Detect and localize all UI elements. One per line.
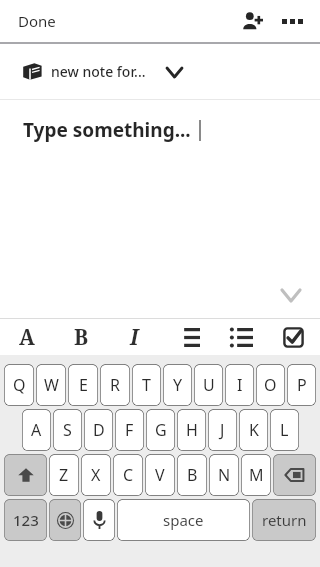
button[interactable]: W	[36, 364, 66, 406]
button[interactable]: N	[209, 454, 239, 496]
staticText: A	[31, 419, 42, 441]
staticText: Done	[18, 11, 56, 31]
button[interactable]: space	[117, 499, 250, 541]
button[interactable]: Numbered list	[161, 319, 214, 355]
button[interactable]: Voice input	[83, 499, 115, 541]
staticText: U	[203, 374, 215, 396]
button[interactable]: C	[113, 454, 143, 496]
button[interactable]: T	[132, 364, 161, 406]
staticText: 123	[13, 510, 39, 530]
button[interactable]: S	[53, 409, 82, 451]
button[interactable]: Bold	[54, 319, 108, 355]
button[interactable]: return	[252, 499, 316, 541]
button[interactable]: Done	[8, 5, 66, 37]
staticText: new note for...	[51, 62, 146, 81]
button[interactable]: Italic	[108, 319, 161, 355]
button[interactable]: K	[239, 409, 268, 451]
button[interactable]: B	[177, 454, 207, 496]
staticText: G	[155, 419, 167, 441]
staticText: Type something...	[23, 117, 191, 143]
button[interactable]: Checklist	[267, 319, 320, 355]
button[interactable]: E	[68, 364, 98, 406]
button[interactable]: D	[84, 409, 113, 451]
staticText: A	[19, 323, 35, 352]
staticText: N	[218, 464, 231, 486]
staticText: P	[297, 374, 307, 396]
staticText: T	[142, 374, 151, 396]
staticText: W	[44, 374, 59, 396]
staticText: I	[130, 323, 139, 352]
button[interactable]: Shift	[4, 454, 47, 496]
staticText: Y	[173, 374, 183, 396]
button[interactable]: Backspace	[273, 454, 316, 496]
button[interactable]: J	[208, 409, 237, 451]
staticText: I	[237, 374, 243, 396]
staticText: V	[155, 464, 165, 486]
staticText: F	[125, 419, 134, 441]
button[interactable]: U	[194, 364, 223, 406]
button[interactable]: M	[241, 454, 271, 496]
staticText: X	[91, 464, 101, 486]
staticText: space	[163, 510, 204, 530]
button[interactable]: Font	[0, 319, 54, 355]
staticText: L	[280, 419, 289, 441]
staticText: J	[220, 419, 225, 441]
button[interactable]: H	[177, 409, 206, 451]
staticText: R	[110, 374, 120, 396]
staticText: C	[123, 464, 134, 486]
button[interactable]: Y	[163, 364, 192, 406]
button[interactable]: new note for...	[0, 44, 320, 99]
staticText: return	[262, 510, 307, 530]
button[interactable]: Z	[49, 454, 79, 496]
staticText: O	[264, 374, 277, 396]
button[interactable]: P	[287, 364, 316, 406]
button[interactable]: X	[81, 454, 111, 496]
button[interactable]: Collapse	[274, 278, 308, 312]
button[interactable]: R	[100, 364, 130, 406]
button[interactable]: G	[146, 409, 175, 451]
staticText: B	[187, 464, 198, 486]
button[interactable]: I	[225, 364, 254, 406]
staticText: H	[186, 419, 198, 441]
button[interactable]: Switch keyboard	[49, 499, 81, 541]
button[interactable]: More options	[272, 1, 312, 41]
button[interactable]: Bulleted list	[214, 319, 267, 355]
button[interactable]: V	[145, 454, 175, 496]
button[interactable]: A	[22, 409, 51, 451]
staticText: S	[63, 419, 72, 441]
button[interactable]: O	[256, 364, 285, 406]
staticText: M	[249, 464, 264, 486]
button[interactable]: L	[270, 409, 299, 451]
staticText: Z	[59, 464, 69, 486]
staticText: K	[249, 419, 259, 441]
button[interactable]: F	[115, 409, 144, 451]
staticText: E	[79, 374, 88, 396]
button[interactable]: 123	[4, 499, 47, 541]
button[interactable]: Q	[4, 364, 34, 406]
staticText: D	[93, 419, 105, 441]
button[interactable]: Add people	[232, 1, 272, 41]
staticText: B	[74, 323, 89, 352]
staticText: Q	[13, 374, 26, 396]
